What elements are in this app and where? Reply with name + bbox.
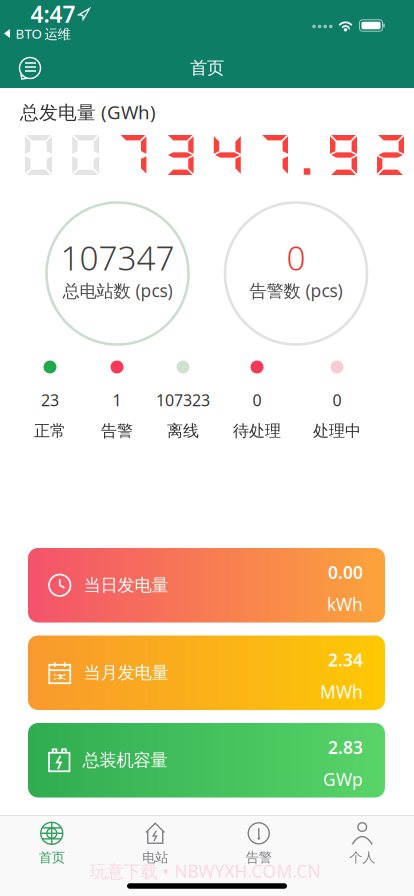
button[interactable]: 告警 bbox=[209, 818, 309, 868]
staticText: 107347 bbox=[60, 235, 174, 280]
staticText: 个人 bbox=[349, 849, 375, 866]
staticText: 0 bbox=[286, 235, 305, 280]
button[interactable]: 首页 bbox=[2, 818, 102, 868]
staticText: MWh bbox=[320, 680, 363, 703]
staticText: 电站 bbox=[142, 849, 168, 866]
button[interactable]: 当月发电量 bbox=[28, 635, 385, 710]
button[interactable]: 当日发电量 bbox=[28, 548, 385, 622]
staticText: 首页 bbox=[190, 57, 224, 79]
staticText: 107323 bbox=[156, 389, 210, 411]
staticText: 总装机容量 bbox=[82, 750, 167, 771]
staticText: 离线 bbox=[167, 421, 199, 441]
staticText: 23 bbox=[41, 389, 59, 411]
staticText: BTO 运维 bbox=[15, 25, 70, 42]
staticText: 处理中 bbox=[313, 421, 361, 441]
staticText: kWh bbox=[327, 593, 363, 616]
staticText: 待处理 bbox=[233, 421, 281, 441]
staticText: 当日发电量 bbox=[83, 575, 168, 596]
button[interactable]: 总装机容量 bbox=[28, 723, 385, 797]
staticText: 玩意下载 • NBWYXH.COM.CN bbox=[89, 859, 320, 882]
staticText: 告警 bbox=[246, 849, 272, 866]
staticText: 首页 bbox=[39, 849, 65, 866]
staticText: 0 bbox=[332, 389, 341, 411]
button[interactable]: 消息 bbox=[15, 54, 45, 82]
staticText: 当月发电量 bbox=[83, 662, 168, 683]
staticText: 正常 bbox=[34, 421, 66, 441]
staticText: 1 bbox=[112, 389, 121, 411]
button[interactable]: 个人 bbox=[312, 818, 412, 868]
staticText: 总发电量 (GWh) bbox=[20, 100, 156, 124]
staticText: 告警 bbox=[101, 421, 133, 441]
staticText: 2.34 bbox=[328, 648, 363, 671]
button[interactable]: 电站 bbox=[105, 818, 205, 868]
staticText: 2.83 bbox=[328, 736, 363, 759]
staticText: 总电站数 (pcs) bbox=[62, 279, 172, 302]
staticText: 4:47 bbox=[30, 0, 75, 29]
staticText: 0 bbox=[252, 389, 261, 411]
staticText: 告警数 (pcs) bbox=[249, 279, 342, 302]
staticText: GWp bbox=[323, 768, 363, 791]
staticText: 0.00 bbox=[328, 561, 363, 584]
